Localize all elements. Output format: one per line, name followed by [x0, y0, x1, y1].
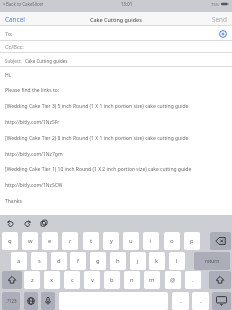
button[interactable]: i [143, 232, 159, 250]
button[interactable]: r [62, 232, 78, 250]
staticText: p [190, 237, 194, 245]
staticText: d [57, 257, 61, 265]
button[interactable]: j [130, 252, 146, 270]
button[interactable]: y [103, 232, 119, 250]
button[interactable]: Paste [37, 216, 51, 230]
staticText: To: [5, 30, 13, 38]
staticText: i [150, 237, 152, 245]
staticText: r [69, 237, 72, 245]
staticText: e [48, 237, 52, 245]
button[interactable]: e [42, 232, 58, 250]
button[interactable]: Backspace [210, 232, 231, 250]
staticText: Thanks [5, 198, 22, 205]
button[interactable]: c [64, 271, 80, 289]
staticText: http://bitly.com/1Nz7gm [5, 151, 63, 158]
button[interactable]: b [104, 271, 120, 289]
staticText: k [155, 257, 159, 265]
button[interactable]: @ [165, 271, 181, 289]
staticText: h [116, 257, 120, 265]
staticText: m [149, 276, 155, 284]
staticText: z [31, 276, 34, 284]
staticText: x [50, 276, 54, 284]
staticText: Back to CakeSlicer [6, 1, 44, 7]
button[interactable]: h [110, 252, 126, 270]
button[interactable]: a [11, 252, 27, 270]
button[interactable]: q [2, 232, 18, 250]
staticText: n [130, 276, 134, 284]
staticText: - [180, 298, 182, 305]
staticText: 13:01 [121, 1, 133, 7]
staticText: Hi, [5, 72, 12, 79]
staticText: c [71, 276, 74, 284]
staticText: Cake Cutting guides [90, 16, 142, 23]
staticText: t [90, 237, 93, 245]
button[interactable]: z [24, 271, 40, 289]
button[interactable]: d [51, 252, 67, 270]
staticText: l [176, 257, 178, 265]
button[interactable]: m [144, 271, 160, 289]
button[interactable]: u [123, 232, 139, 250]
staticText: Cc/Bcc: [5, 43, 24, 51]
button[interactable]: Dictate [41, 292, 55, 310]
staticText: g [96, 257, 100, 265]
button[interactable]: n [124, 271, 140, 289]
button[interactable]: - [192, 292, 209, 310]
staticText: return [205, 258, 220, 265]
button[interactable]: . [185, 271, 201, 289]
button[interactable]: Undo [3, 216, 17, 230]
button[interactable]: Shift [209, 271, 231, 289]
button[interactable]: w [22, 232, 38, 250]
staticText: http://bitly.com/1NzSCW [5, 182, 63, 189]
staticText: - [200, 298, 202, 305]
button[interactable]: o [164, 232, 180, 250]
staticText: o [170, 237, 174, 245]
button[interactable]: x [44, 271, 60, 289]
button[interactable]: Add contact [218, 29, 227, 38]
button[interactable]: t [83, 232, 99, 250]
staticText: y [110, 237, 113, 245]
staticText: 75% [211, 2, 219, 7]
staticText: s [38, 257, 41, 265]
staticText: v [91, 276, 94, 284]
staticText: j [137, 257, 139, 265]
staticText: . [192, 276, 194, 284]
button[interactable]: Redo [20, 216, 34, 230]
button[interactable]: .?123 [2, 292, 20, 310]
button[interactable]: Shift [2, 271, 22, 289]
staticText: f [77, 257, 79, 265]
button[interactable]: l [169, 252, 185, 270]
button[interactable]: Cancel [0, 12, 29, 26]
staticText: w [28, 237, 33, 245]
button[interactable]: s [31, 252, 47, 270]
button[interactable]: Hide keyboard [212, 292, 231, 310]
staticText: Send [212, 15, 227, 23]
staticText: http://bitly.com/1NzSFr [5, 119, 60, 126]
staticText: Please find the links to: [5, 87, 60, 94]
button[interactable]: p [184, 232, 200, 250]
button[interactable]: g [90, 252, 106, 270]
staticText: [Wedding Cake Tier 1) 10 inch Round (1 X… [5, 166, 192, 173]
button[interactable]: return [194, 252, 230, 270]
button[interactable]: v [84, 271, 100, 289]
button[interactable]: Send [208, 12, 232, 26]
button[interactable]: Emoji [24, 292, 38, 310]
button[interactable]: - [172, 292, 189, 310]
staticText: [Wedding Cake Tier 2) 8 inch Round (1 X … [5, 135, 189, 142]
staticText: b [110, 276, 114, 284]
button[interactable]: k [149, 252, 165, 270]
staticText: u [129, 237, 133, 245]
staticText: [Wedding Cake Tier 3) 5 inch Round (1 X … [5, 103, 189, 110]
staticText: Cancel [5, 15, 25, 23]
staticText: .?123 [6, 298, 17, 304]
staticText: Subject: [5, 58, 22, 64]
staticText: Cake Cutting guides [25, 58, 68, 64]
staticText: @ [170, 276, 176, 284]
button[interactable]: f [70, 252, 86, 270]
staticText: q [8, 237, 12, 245]
staticText: a [17, 257, 21, 265]
